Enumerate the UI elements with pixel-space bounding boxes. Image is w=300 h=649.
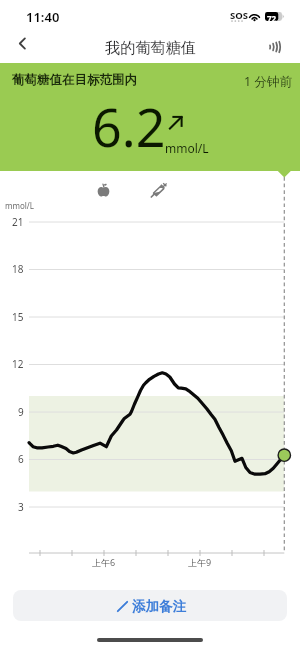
staticText: 3 [18, 500, 24, 514]
staticText: 21 [12, 215, 24, 229]
staticText: 72 [267, 13, 277, 24]
staticText: 12 [12, 357, 24, 371]
button[interactable]: Food event [97, 183, 110, 197]
staticText: 1 分钟前 [244, 73, 292, 90]
staticText: 9 [18, 405, 24, 419]
staticText: mmol/L [5, 200, 35, 211]
staticText: 11:40 [26, 8, 60, 26]
staticText: SOS [230, 9, 248, 22]
staticText: 上午6 [92, 556, 116, 568]
staticText: 6 [18, 452, 24, 466]
staticText: 6.2 [92, 91, 166, 162]
staticText: 葡萄糖值在目标范围内 [12, 72, 137, 88]
staticText: mmol/L [165, 140, 209, 156]
button[interactable]: Back [2, 24, 42, 63]
staticText: 15 [12, 310, 24, 324]
staticText: 上午9 [188, 556, 212, 568]
staticText: 18 [12, 262, 24, 276]
staticText: 添加备注 [132, 598, 186, 615]
button[interactable]: Sensor signal [262, 24, 300, 63]
staticText: 我的葡萄糖值 [105, 38, 197, 57]
button[interactable]: Insulin event [151, 183, 167, 197]
button[interactable]: 添加备注 [13, 590, 287, 621]
